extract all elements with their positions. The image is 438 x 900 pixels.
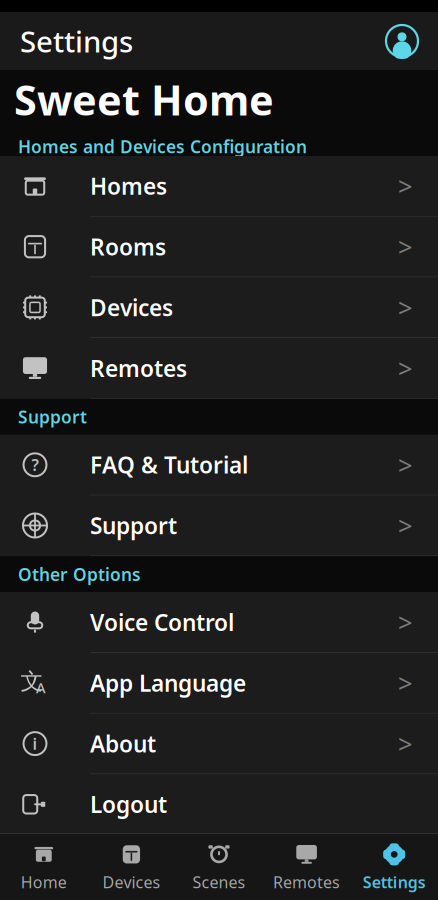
staticText: Rooms xyxy=(90,232,166,262)
button[interactable]: Settings xyxy=(350,837,438,897)
staticText: Settings xyxy=(363,871,426,893)
staticText: FAQ & Tutorial xyxy=(90,450,248,480)
staticText: Homes xyxy=(90,171,167,201)
button[interactable]: 文 xyxy=(0,653,438,714)
staticText: > xyxy=(398,230,412,263)
staticText: > xyxy=(398,666,412,700)
button[interactable]: Logout xyxy=(0,774,438,835)
button[interactable]: ? xyxy=(0,435,438,495)
button[interactable]: Homes xyxy=(0,156,438,217)
staticText: Devices xyxy=(102,871,160,893)
staticText: Devices xyxy=(90,292,173,322)
button[interactable]: i xyxy=(0,714,438,774)
staticText: > xyxy=(398,605,412,639)
staticText: About xyxy=(90,728,156,759)
staticText: > xyxy=(398,351,412,385)
staticText: i xyxy=(32,733,37,754)
staticText: Settings xyxy=(20,21,133,60)
button[interactable]: Profile xyxy=(384,23,438,59)
button[interactable]: Rooms xyxy=(0,217,438,277)
staticText: Remotes xyxy=(273,871,340,893)
staticText: A xyxy=(36,678,46,697)
button[interactable]: Voice Control xyxy=(0,592,438,653)
staticText: Support xyxy=(18,405,87,428)
button[interactable]: Support xyxy=(0,495,438,556)
staticText: Home xyxy=(21,871,67,893)
staticText: > xyxy=(398,727,412,760)
staticText: Homes and Devices Configuration xyxy=(18,135,307,158)
button[interactable]: Devices xyxy=(88,837,175,897)
button[interactable]: Remotes xyxy=(263,837,350,897)
staticText: 文 xyxy=(20,668,43,695)
staticText: > xyxy=(398,169,412,203)
button[interactable]: Home xyxy=(0,837,88,897)
staticText: Remotes xyxy=(90,353,187,383)
staticText: Logout xyxy=(90,789,167,819)
staticText: > xyxy=(398,291,412,324)
button[interactable]: Devices xyxy=(0,277,438,338)
button[interactable]: Scenes xyxy=(175,837,263,897)
button[interactable]: Remotes xyxy=(0,338,438,399)
staticText: App Language xyxy=(90,668,246,698)
staticText: > xyxy=(398,448,412,482)
staticText: Other Options xyxy=(18,563,141,586)
staticText: Voice Control xyxy=(90,607,234,637)
staticText: > xyxy=(398,509,412,542)
staticText: ? xyxy=(31,454,38,475)
staticText: Scenes xyxy=(192,871,245,893)
staticText: Support xyxy=(90,510,177,540)
staticText: Sweet Home xyxy=(14,72,274,127)
